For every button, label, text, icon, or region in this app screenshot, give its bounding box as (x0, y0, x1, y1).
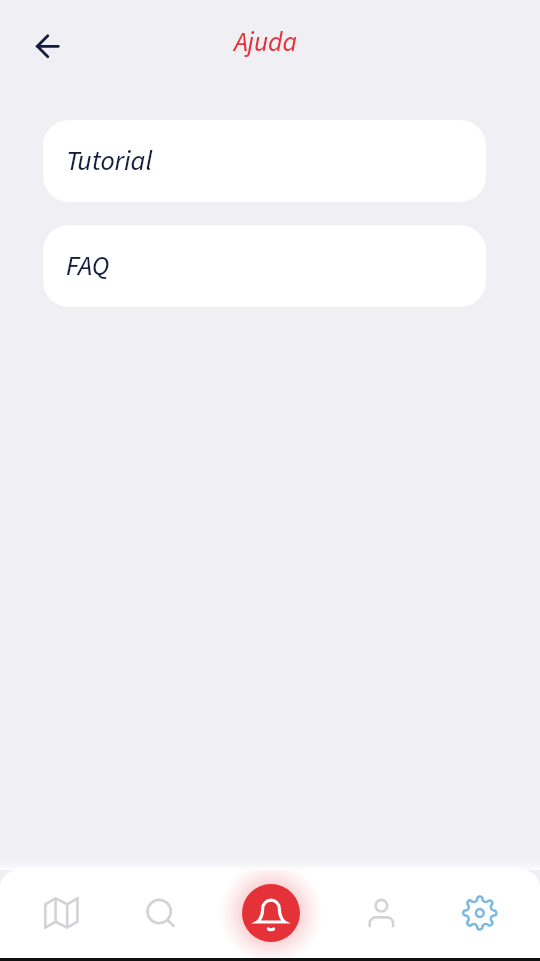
button[interactable]: Back (25, 24, 70, 69)
button[interactable]: FAQ (43, 225, 486, 307)
button[interactable]: Search (108, 870, 216, 961)
staticText: Ajuda (0, 23, 531, 61)
button[interactable]: Notifications (242, 884, 300, 942)
staticText: Tutorial (66, 142, 153, 181)
button[interactable]: Tutorial (43, 120, 486, 202)
button[interactable]: Profile (324, 870, 432, 961)
button[interactable]: Map (0, 870, 108, 961)
staticText: FAQ (66, 247, 110, 286)
button[interactable]: Settings (432, 870, 540, 961)
